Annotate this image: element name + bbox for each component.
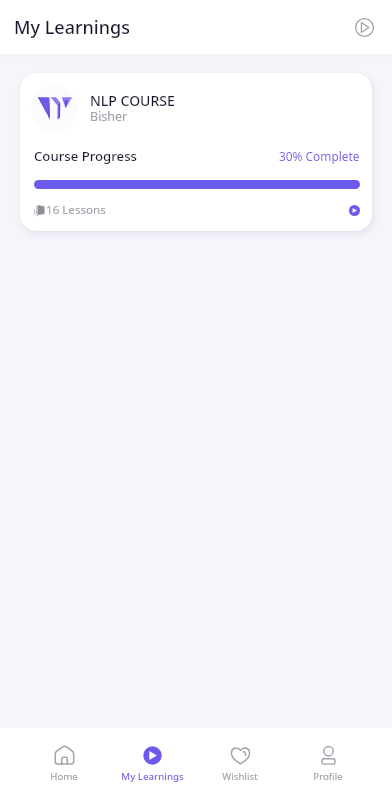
button[interactable]: My Learnings [108, 728, 196, 800]
staticText: Home [50, 770, 78, 783]
staticText: Bisher [90, 108, 128, 125]
button[interactable]: Wishlist [196, 728, 284, 800]
button[interactable]: Home [20, 728, 108, 800]
staticText: 16 Lessons [46, 202, 106, 218]
staticText: NLP COURSE [90, 91, 175, 110]
staticText: Course Progress [34, 147, 137, 165]
staticText: 30% Complete [279, 148, 360, 164]
button[interactable]: NLP COURSE [20, 73, 372, 231]
staticText: Wishlist [222, 770, 258, 783]
button[interactable]: Continue course [349, 205, 360, 216]
staticText: My Learnings [121, 770, 184, 783]
button[interactable]: Play [347, 10, 381, 44]
button[interactable]: Profile [284, 728, 372, 800]
staticText: My Learnings [14, 15, 130, 40]
staticText: Profile [313, 770, 343, 783]
